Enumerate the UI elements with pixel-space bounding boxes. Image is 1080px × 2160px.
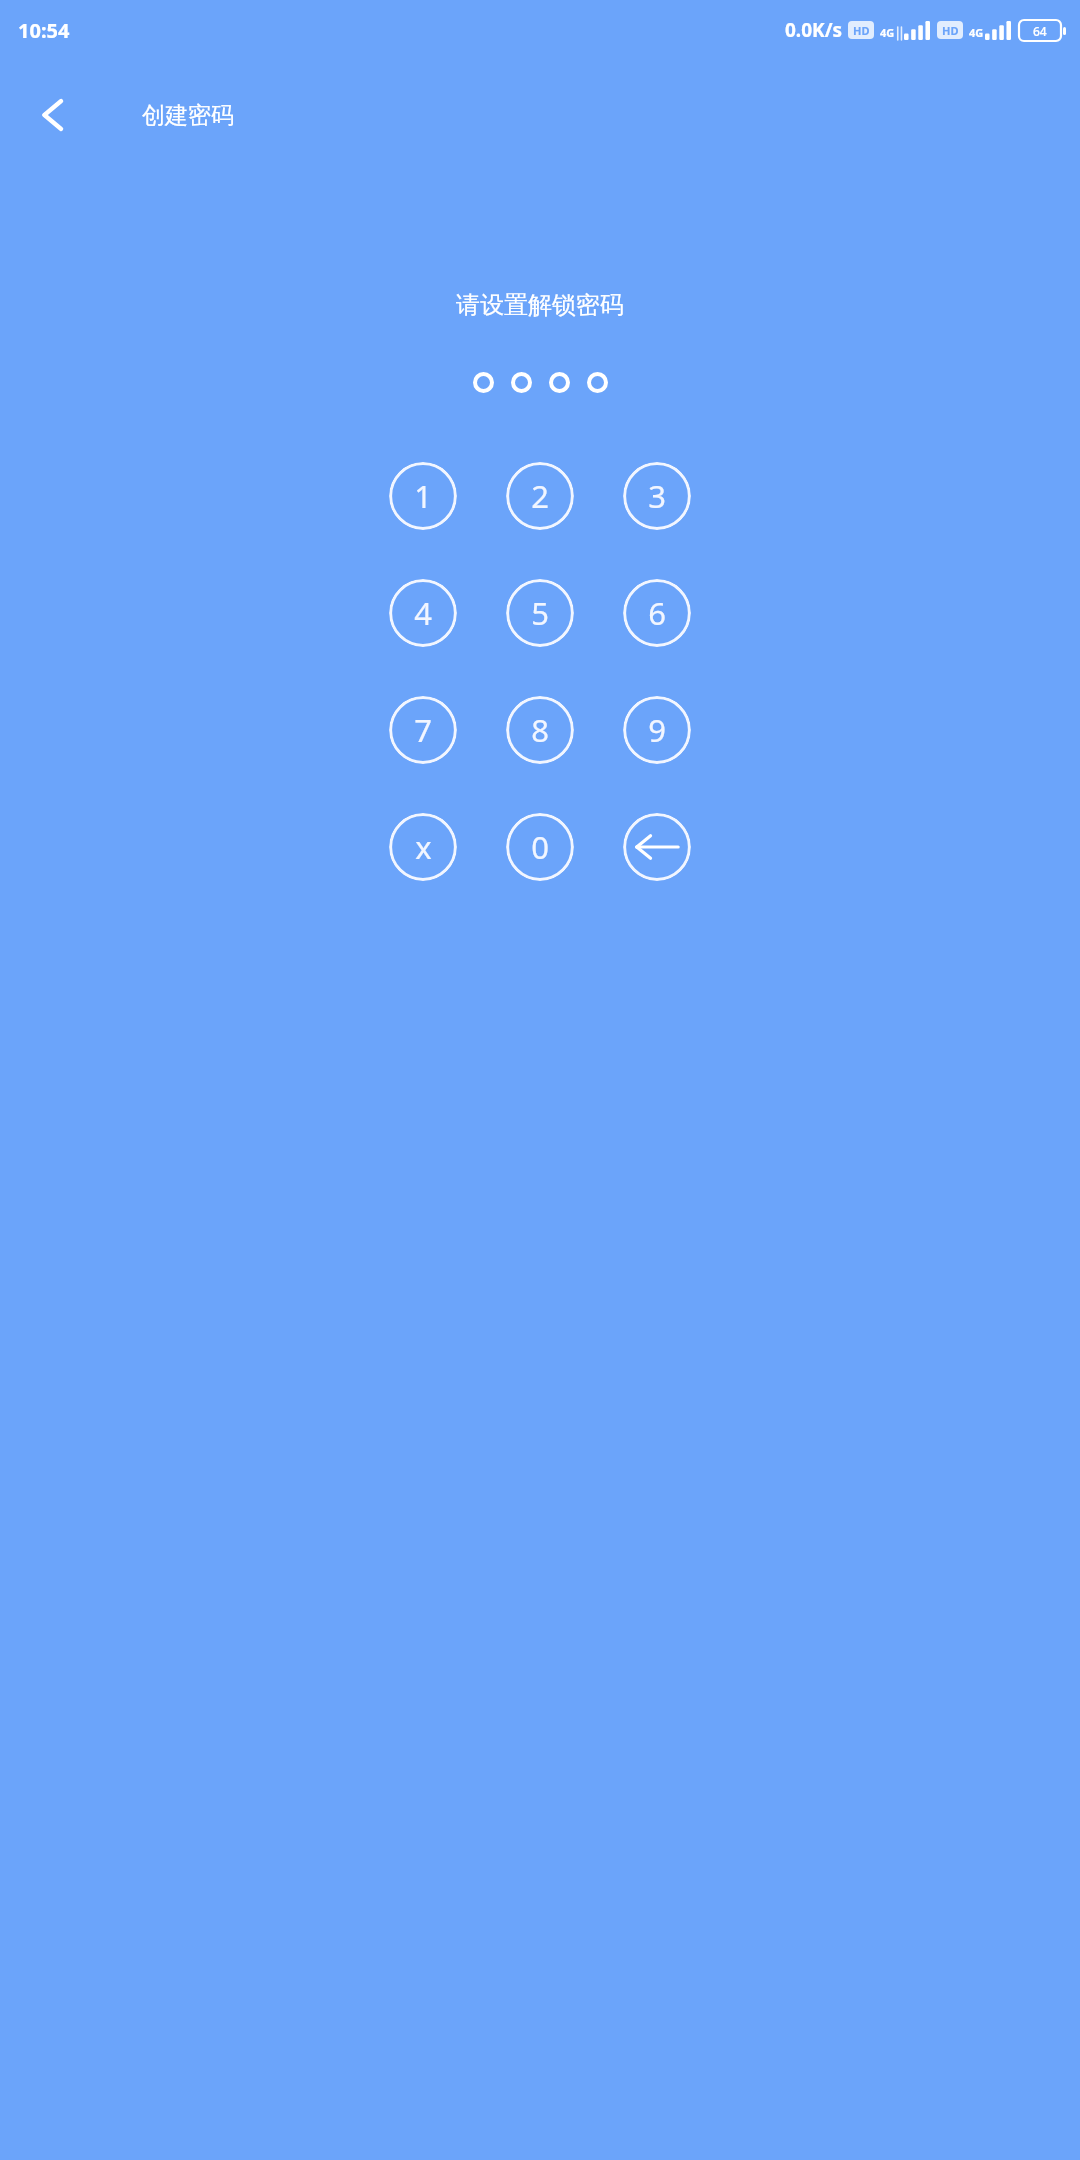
button[interactable]: 1 [389,462,457,530]
staticText: 4 [414,592,432,634]
button[interactable]: 8 [506,696,574,764]
staticText: 4G [880,25,895,40]
staticText: 1 [414,475,432,517]
staticText: 7 [414,709,432,751]
button[interactable]: 9 [623,696,691,764]
button[interactable]: Back [10,73,94,157]
staticText: 0.0K/s [785,17,843,43]
staticText: HD [942,23,959,38]
staticText: 0 [531,826,549,868]
staticText: 4G [969,25,984,40]
staticText: 64 [1033,23,1047,39]
button[interactable]: Clear [389,813,457,881]
button[interactable]: 3 [623,462,691,530]
staticText: 6 [648,592,666,634]
staticText: 2 [531,475,549,517]
staticText: 8 [531,709,549,751]
button[interactable]: 4 [389,579,457,647]
staticText: 创建密码 [142,101,234,130]
staticText: 10:54 [18,17,70,44]
button[interactable]: 7 [389,696,457,764]
staticText: HD [853,23,870,38]
button[interactable]: 5 [506,579,574,647]
staticText: 请设置解锁密码 [0,290,1080,320]
staticText: 9 [648,709,666,751]
button[interactable]: 6 [623,579,691,647]
staticText: x [415,826,432,868]
button[interactable]: 0 [506,813,574,881]
staticText: 5 [531,592,549,634]
staticText: 3 [648,475,666,517]
button[interactable]: Delete [623,813,691,881]
button[interactable]: 2 [506,462,574,530]
